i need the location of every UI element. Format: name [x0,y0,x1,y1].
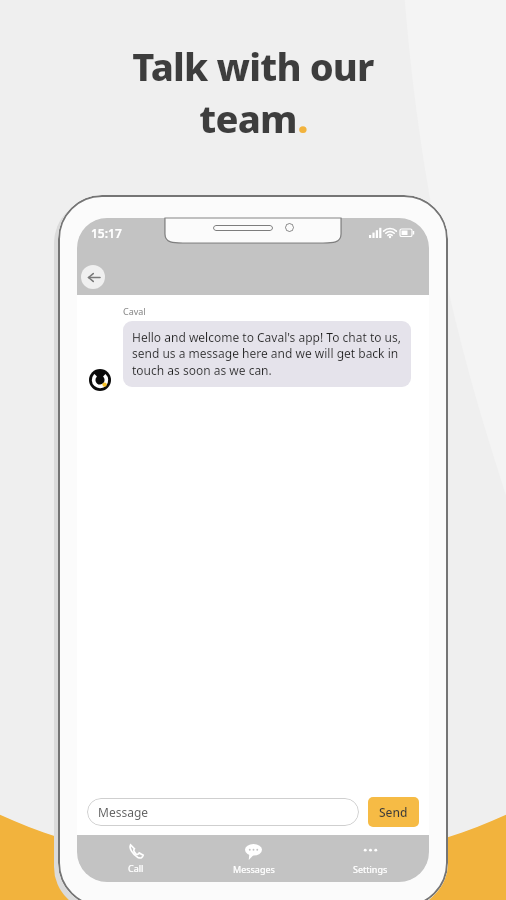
staticText: Settings [353,863,388,875]
button[interactable]: Hello and welcome to Caval's app! To cha… [123,321,411,387]
staticText: Hello and welcome to Caval's app! To cha… [132,329,402,379]
button[interactable]: Message [87,798,359,826]
button[interactable]: Settings [312,835,429,882]
staticText: team [199,92,297,144]
staticText: Talk with our [132,40,374,92]
button[interactable]: Messages [195,835,312,882]
staticText: Messages [233,863,275,875]
button[interactable]: Call [77,835,195,882]
staticText: 15:17 [91,225,122,241]
staticText: Message [98,804,149,820]
button[interactable]: Back [81,265,105,289]
staticText: Call [128,862,144,874]
staticText: Send [379,804,408,820]
button[interactable]: Send [368,797,419,827]
staticText: Caval [123,305,146,317]
staticText: . [297,92,308,144]
